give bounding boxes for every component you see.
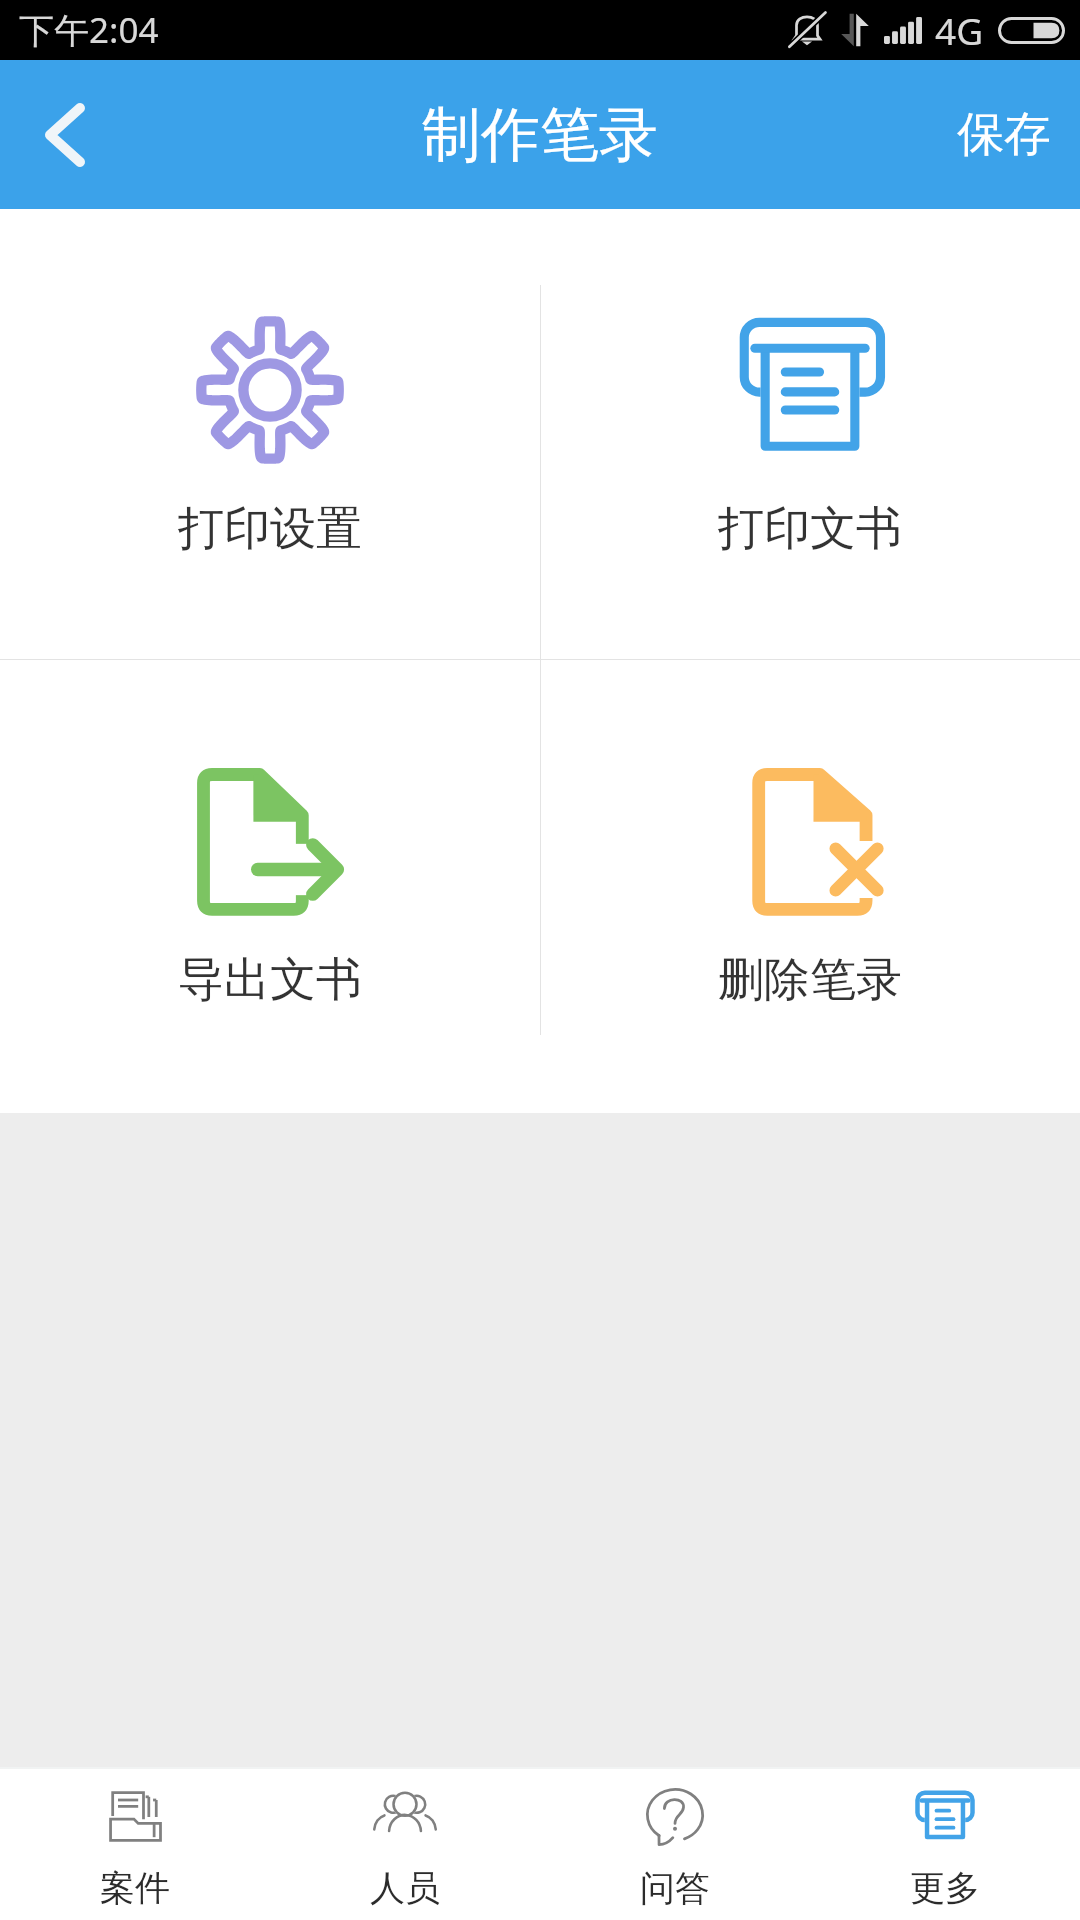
staticText: 人员 (370, 1866, 440, 1910)
staticText: 制作笔录 (422, 98, 658, 172)
staticText: 打印文书 (718, 500, 902, 558)
button[interactable]: 保存 (917, 75, 1080, 194)
staticText: 打印设置 (178, 500, 362, 558)
button[interactable]: 打印文书 (540, 209, 1080, 558)
staticText: 4G (935, 5, 984, 55)
button[interactable]: 问答 (540, 1771, 810, 1918)
button[interactable]: 删除笔录 (540, 660, 1080, 1009)
button[interactable]: 打印设置 (0, 209, 539, 558)
button[interactable]: 人员 (270, 1771, 540, 1918)
staticText: 导出文书 (178, 951, 362, 1009)
button[interactable]: 返回 (15, 85, 115, 185)
staticText: 更多 (910, 1866, 980, 1910)
button[interactable]: 更多 (810, 1771, 1080, 1918)
staticText: 删除笔录 (718, 951, 902, 1009)
staticText: 保存 (957, 105, 1051, 164)
staticText: 问答 (640, 1866, 710, 1910)
staticText: 下午2:04 (19, 6, 159, 54)
button[interactable]: 导出文书 (0, 660, 539, 1009)
staticText: 案件 (100, 1866, 170, 1910)
button[interactable]: 案件 (0, 1771, 270, 1918)
